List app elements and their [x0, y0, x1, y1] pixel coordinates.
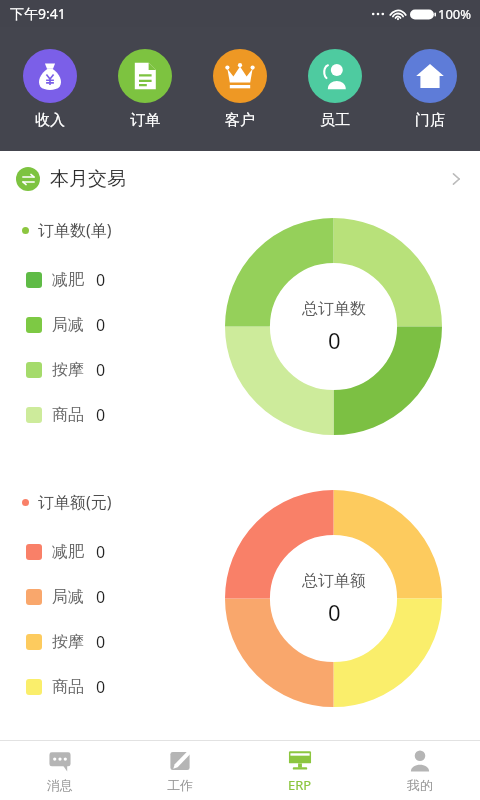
staticText: 0	[96, 404, 106, 426]
button[interactable]: 消息	[0, 741, 120, 800]
staticText: 商品	[52, 405, 84, 425]
staticText: 局减	[52, 315, 84, 335]
staticText: 0	[96, 314, 106, 336]
staticText: 减肥	[52, 270, 84, 290]
staticText: 订单额(元)	[38, 491, 112, 513]
staticText: 0	[96, 359, 106, 381]
staticText: 按摩	[52, 360, 84, 380]
staticText: 订单	[130, 111, 160, 130]
button[interactable]: 订单	[100, 27, 190, 130]
button[interactable]: 本月交易	[0, 151, 480, 207]
staticText: 收入	[35, 111, 65, 130]
button[interactable]: 收入	[5, 27, 95, 130]
button[interactable]: 工作	[120, 741, 240, 800]
staticText: 减肥	[52, 542, 84, 562]
staticText: 商品	[52, 677, 84, 697]
staticText: 0	[328, 597, 341, 627]
button[interactable]: 我的	[360, 741, 480, 800]
staticText: 0	[96, 269, 106, 291]
staticText: 我的	[407, 777, 433, 793]
button[interactable]: ERP	[240, 741, 360, 800]
staticText: 总订单数	[302, 299, 366, 319]
staticText: 0	[96, 631, 106, 653]
button[interactable]: 员工	[290, 27, 380, 130]
button[interactable]: 门店	[385, 27, 475, 130]
staticText: 订单数(单)	[38, 219, 112, 241]
staticText: 按摩	[52, 632, 84, 652]
staticText: 总订单额	[302, 571, 366, 591]
button[interactable]: 客户	[195, 27, 285, 130]
staticText: 客户	[225, 111, 255, 130]
staticText: 消息	[47, 777, 73, 793]
staticText: 0	[96, 541, 106, 563]
staticText: 0	[328, 325, 341, 355]
staticText: 局减	[52, 587, 84, 607]
staticText: 员工	[320, 111, 350, 130]
staticText: 下午9:41	[10, 4, 66, 23]
staticText: ERP	[288, 776, 312, 794]
staticText: 0	[96, 586, 106, 608]
staticText: 门店	[415, 111, 445, 130]
staticText: 0	[96, 676, 106, 698]
staticText: 本月交易	[50, 167, 126, 191]
staticText: 工作	[167, 777, 193, 793]
staticText: 100%	[438, 5, 472, 23]
